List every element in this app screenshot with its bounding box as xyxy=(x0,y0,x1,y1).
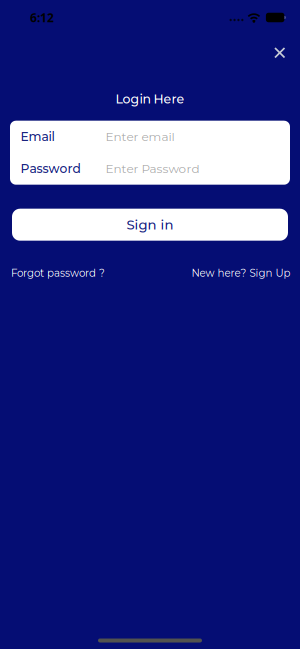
staticText: Password xyxy=(20,161,80,176)
staticText: 6:12 xyxy=(30,9,54,26)
staticText: Sign in xyxy=(126,217,173,233)
button[interactable]: Forgot password ? xyxy=(11,267,105,279)
button[interactable]: New here? Sign Up xyxy=(191,267,290,279)
button[interactable] xyxy=(267,40,292,65)
staticText: Forgot password ? xyxy=(11,267,105,279)
staticText: Login Here xyxy=(115,91,184,107)
staticText: Enter email xyxy=(105,129,174,144)
button[interactable]: Email xyxy=(10,121,290,153)
staticText: Enter Password xyxy=(105,161,199,176)
button[interactable]: Password xyxy=(10,153,290,185)
button[interactable]: Sign in xyxy=(12,209,288,241)
staticText: Email xyxy=(20,129,54,144)
staticText: New here? Sign Up xyxy=(191,267,290,279)
